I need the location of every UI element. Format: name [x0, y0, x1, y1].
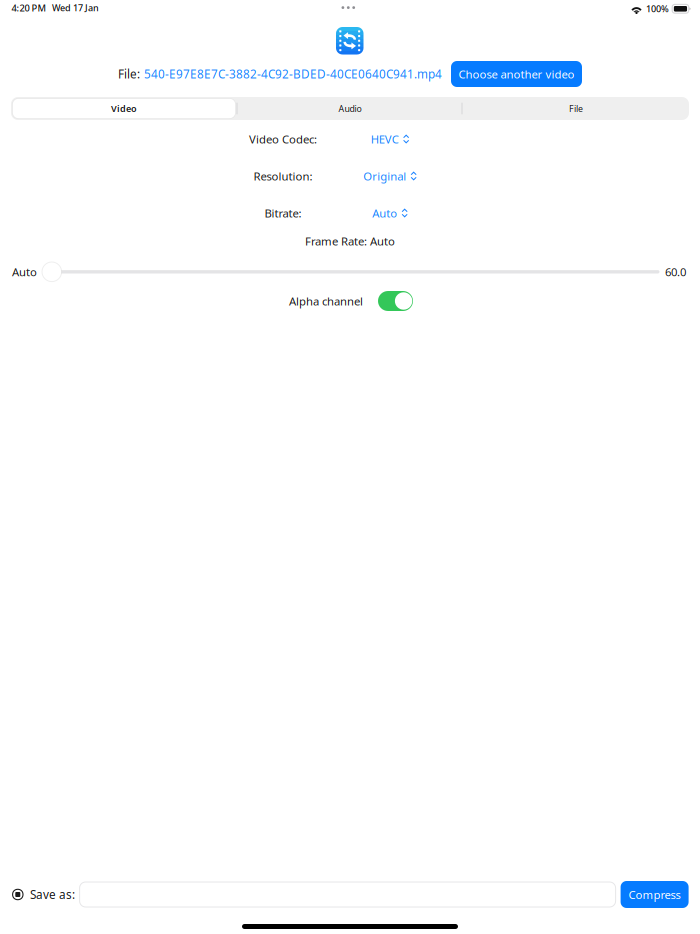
- button[interactable]: Choose another video: [451, 61, 582, 87]
- staticText: Bitrate:: [264, 205, 301, 221]
- staticText: Save as:: [30, 886, 75, 902]
- staticText: Resolution:: [253, 168, 312, 184]
- staticText: Compress: [629, 887, 681, 902]
- button[interactable]: Original: [323, 167, 457, 185]
- button[interactable]: 540-E97E8E7C-3882-4C92-BDED-40CE0640C941…: [144, 66, 442, 82]
- staticText: Video Codec:: [249, 131, 317, 147]
- staticText: Alpha channel: [289, 293, 363, 309]
- staticText: 4:20 PM: [11, 1, 46, 14]
- staticText: Original: [363, 168, 406, 184]
- button[interactable]: Audio: [237, 97, 463, 120]
- staticText: 100%: [646, 3, 669, 15]
- button[interactable]: Alpha channel: [378, 291, 413, 311]
- staticText: Audio: [338, 102, 361, 114]
- staticText: 60.0: [665, 264, 686, 279]
- staticText: File: [569, 102, 583, 114]
- button[interactable]: HEVC: [323, 130, 457, 148]
- button[interactable]: Stop: [12, 889, 24, 900]
- staticText: Frame Rate: Auto: [305, 233, 395, 249]
- button[interactable]: Compress: [621, 881, 689, 908]
- staticText: Wed 17 Jan: [52, 2, 99, 14]
- staticText: File:: [118, 66, 140, 82]
- staticText: 540-E97E8E7C-3882-4C92-BDED-40CE0640C941…: [144, 66, 442, 82]
- staticText: Auto: [12, 264, 37, 279]
- button[interactable]: Auto: [323, 204, 457, 222]
- staticText: Auto: [372, 205, 397, 221]
- button[interactable]: Video: [11, 97, 237, 120]
- staticText: Video: [111, 102, 137, 115]
- staticText: Choose another video: [458, 66, 574, 82]
- button[interactable]: File: [463, 97, 689, 120]
- staticText: HEVC: [371, 131, 399, 147]
